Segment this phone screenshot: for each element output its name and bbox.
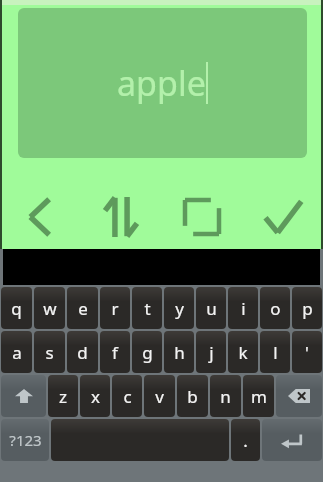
button[interactable]: h <box>164 331 194 373</box>
staticText: v <box>155 385 164 408</box>
staticText: n <box>220 385 231 408</box>
staticText: r <box>111 297 119 320</box>
button[interactable]: Space <box>51 419 229 461</box>
staticText: apple <box>117 60 206 106</box>
button[interactable]: Backspace <box>276 375 322 417</box>
staticText: f <box>112 341 118 364</box>
button[interactable]: n <box>210 375 241 417</box>
staticText: l <box>273 341 278 364</box>
button[interactable]: w <box>34 287 65 329</box>
button[interactable]: Select all <box>161 188 242 246</box>
staticText: d <box>77 341 88 364</box>
staticText: p <box>302 297 313 320</box>
button[interactable]: a <box>1 331 32 373</box>
button[interactable]: c <box>112 375 142 417</box>
staticText: a <box>12 341 22 364</box>
button[interactable]: Previous and next field <box>80 188 161 246</box>
button[interactable]: apple <box>18 8 307 158</box>
button[interactable]: s <box>34 331 65 373</box>
button[interactable]: r <box>100 287 130 329</box>
staticText: . <box>243 429 248 452</box>
button[interactable]: ?123 <box>1 419 49 461</box>
button[interactable]: y <box>164 287 194 329</box>
button[interactable]: u <box>196 287 226 329</box>
staticText: m <box>251 385 267 408</box>
button[interactable]: ' <box>292 331 322 373</box>
button[interactable]: p <box>292 287 322 329</box>
staticText: ' <box>305 341 309 364</box>
button[interactable]: t <box>132 287 162 329</box>
staticText: s <box>45 341 54 364</box>
button[interactable]: Enter <box>262 419 322 461</box>
button[interactable]: q <box>1 287 32 329</box>
staticText: g <box>142 341 153 364</box>
button[interactable]: x <box>80 375 110 417</box>
button[interactable]: b <box>177 375 208 417</box>
button[interactable]: o <box>260 287 290 329</box>
staticText: x <box>91 385 100 408</box>
staticText: y <box>175 297 184 320</box>
staticText: i <box>241 297 246 320</box>
staticText: u <box>206 297 217 320</box>
button[interactable]: l <box>260 331 290 373</box>
staticText: b <box>187 385 198 408</box>
staticText: h <box>174 341 185 364</box>
staticText: q <box>11 297 22 320</box>
staticText: e <box>78 297 88 320</box>
staticText: j <box>209 341 214 364</box>
staticText: t <box>144 297 151 320</box>
button[interactable]: k <box>228 331 258 373</box>
staticText: c <box>123 385 132 408</box>
button[interactable]: z <box>48 375 78 417</box>
button[interactable]: g <box>132 331 162 373</box>
button[interactable]: . <box>231 419 260 461</box>
button[interactable]: m <box>243 375 274 417</box>
button[interactable]: Back <box>0 188 80 246</box>
button[interactable]: e <box>67 287 98 329</box>
button[interactable]: Shift <box>1 375 46 417</box>
button[interactable]: f <box>100 331 130 373</box>
button[interactable]: j <box>196 331 226 373</box>
staticText: z <box>59 385 67 408</box>
staticText: k <box>238 341 248 364</box>
staticText: ?123 <box>9 430 42 450</box>
button[interactable]: Done <box>242 188 323 246</box>
staticText: w <box>43 297 57 320</box>
button[interactable]: i <box>228 287 258 329</box>
button[interactable]: d <box>67 331 98 373</box>
staticText: o <box>270 297 281 320</box>
button[interactable]: v <box>144 375 175 417</box>
